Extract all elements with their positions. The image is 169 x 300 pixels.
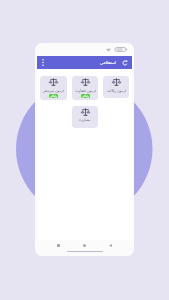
button[interactable]: آزمون قضاوت [72, 76, 98, 100]
button[interactable]: Refresh [120, 56, 129, 69]
staticText: آزمون قضاوت [75, 88, 96, 93]
staticText: رایگان [50, 95, 57, 98]
staticText: مشاوره [79, 118, 91, 122]
button[interactable]: Home [80, 241, 89, 250]
button[interactable]: مشاوره [72, 106, 98, 128]
staticText: آزمون وکالت [107, 88, 126, 93]
staticText: استعلامی [100, 60, 117, 65]
button[interactable]: آزمون سردفتر [40, 76, 67, 100]
button[interactable]: Back [106, 241, 115, 250]
staticText: رایگان [82, 95, 89, 98]
button[interactable]: آزمون وکالت [103, 76, 129, 98]
staticText: آزمون سردفتر [43, 88, 64, 93]
button[interactable]: More options [37, 56, 48, 69]
button[interactable]: Recents [54, 241, 63, 250]
